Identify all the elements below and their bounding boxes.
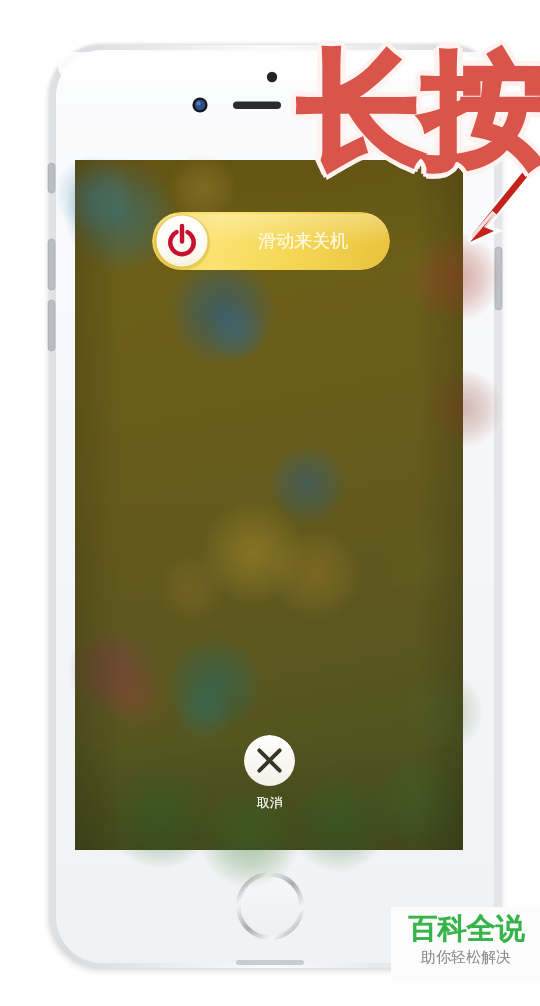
staticText: 长按	[293, 33, 540, 183]
staticText: 滑动来关机	[258, 230, 348, 253]
staticText: 长按	[296, 41, 540, 191]
staticText: 长按	[301, 36, 540, 186]
staticText: 长按	[296, 36, 540, 186]
staticText: 长按	[299, 39, 540, 189]
staticText: 长按	[292, 36, 540, 186]
staticText: 助你轻松解决	[421, 948, 511, 967]
staticText: 长按	[293, 39, 540, 189]
staticText: 长按	[291, 36, 539, 186]
button[interactable]: 滑动来关机	[152, 212, 390, 270]
staticText: 取消	[257, 794, 283, 810]
staticText: 百科全说	[408, 911, 524, 948]
staticText: 长按	[296, 40, 540, 190]
staticText: 长按	[299, 33, 540, 183]
staticText: 长按	[300, 36, 540, 186]
staticText: 长按	[296, 32, 540, 182]
button[interactable]: 取消	[244, 735, 295, 810]
staticText: 长按	[296, 31, 540, 181]
